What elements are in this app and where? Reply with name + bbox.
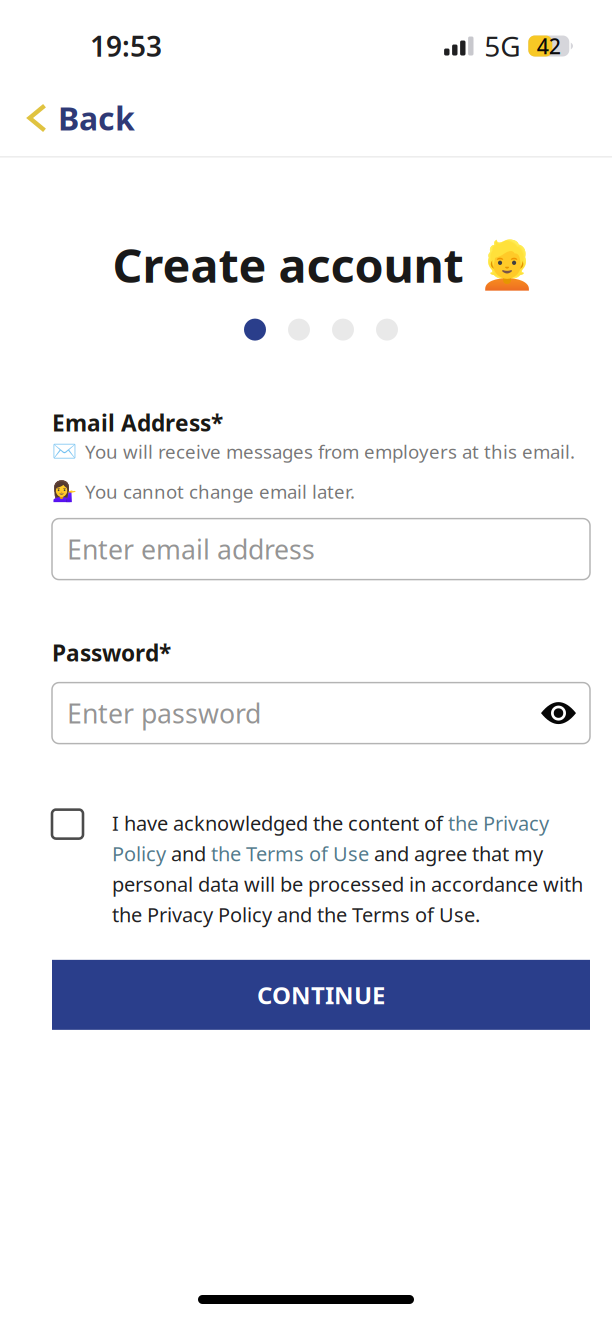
staticText: Email Address* — [52, 407, 223, 438]
staticText: ✉️ — [52, 440, 77, 463]
staticText: Enter password — [67, 695, 261, 731]
staticText: 👱 — [477, 238, 535, 291]
staticText: 💁‍♀️ — [52, 480, 77, 503]
staticText: 42 — [537, 32, 561, 60]
button[interactable]: Back — [0, 81, 155, 151]
staticText: Password* — [52, 637, 171, 668]
staticText: Back — [58, 97, 135, 139]
button[interactable]: Show password — [541, 702, 576, 725]
staticText: 5G — [484, 27, 520, 65]
staticText: You cannot change email later. — [85, 479, 355, 504]
button[interactable]: Acknowledge privacy policy and terms of … — [52, 810, 83, 839]
staticText: You will receive messages from employers… — [85, 439, 575, 464]
staticText: 19:53 — [90, 27, 162, 65]
staticText: CONTINUE — [257, 979, 385, 1011]
staticText: Enter email address — [67, 531, 315, 567]
staticText: Create account — [112, 234, 463, 296]
staticText: I have acknowledged the content of the P… — [112, 810, 583, 928]
button[interactable]: CONTINUE — [52, 960, 590, 1030]
